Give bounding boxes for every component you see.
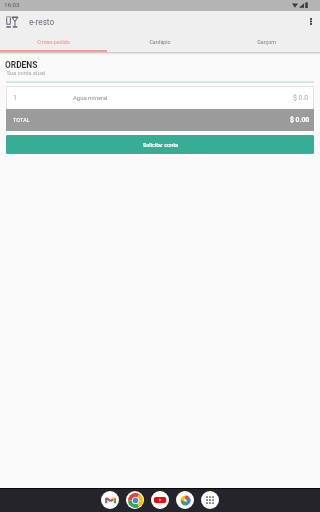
- staticText: 1: [13, 94, 17, 102]
- button[interactable]: More options: [302, 12, 320, 30]
- staticText: Sua conta atual: [7, 70, 46, 76]
- button[interactable]: 1: [7, 87, 313, 109]
- button[interactable]: Open navigation menu: [4, 14, 20, 30]
- button[interactable]: YouTube: [151, 491, 169, 509]
- button[interactable]: Cardápio: [106, 33, 213, 50]
- staticText: Solicitar conta: [143, 142, 178, 148]
- button[interactable]: Chrome: [126, 491, 144, 509]
- button[interactable]: Solicitar conta: [6, 135, 314, 154]
- button[interactable]: Garçom: [213, 33, 320, 50]
- staticText: $ 0.0: [293, 94, 309, 102]
- staticText: Garçom: [257, 39, 276, 45]
- button[interactable]: O meu pedido: [0, 33, 106, 50]
- button[interactable]: Gmail: [101, 491, 119, 509]
- staticText: Agua mineral: [73, 95, 108, 102]
- staticText: Cardápio: [149, 39, 171, 45]
- staticText: 16:03: [4, 1, 20, 8]
- button[interactable]: Photos: [176, 491, 194, 509]
- staticText: O meu pedido: [37, 39, 70, 45]
- button[interactable]: All apps: [201, 491, 219, 509]
- staticText: ORDENS: [5, 60, 38, 70]
- staticText: e-resto: [29, 17, 55, 27]
- staticText: $ 0.00: [290, 116, 310, 124]
- staticText: TOTAL: [13, 117, 30, 123]
